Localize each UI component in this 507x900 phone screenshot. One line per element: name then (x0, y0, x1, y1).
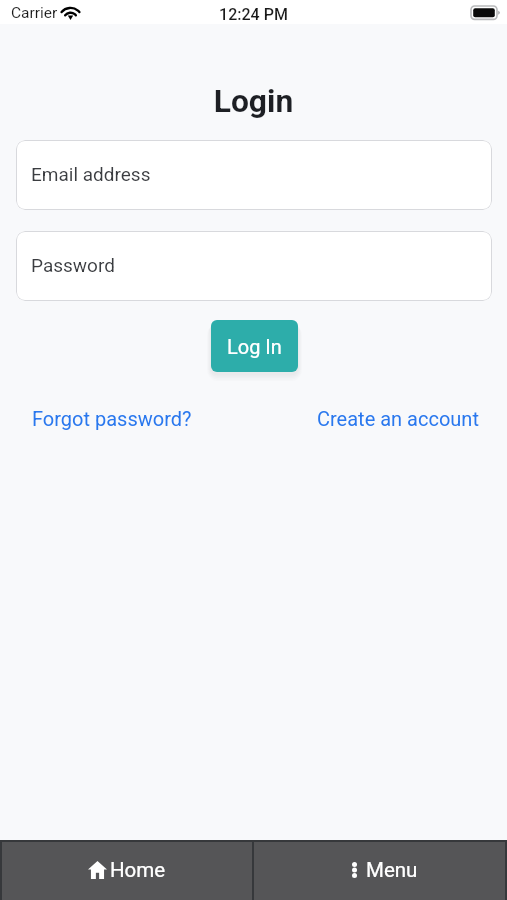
button[interactable]: Password (16, 231, 492, 301)
button[interactable]: Forgot password? (20, 401, 204, 436)
button[interactable]: Email address (16, 140, 492, 210)
other: Menu (352, 862, 357, 878)
staticText: 12:24 PM (0, 5, 507, 24)
button[interactable]: Home (2, 842, 252, 900)
staticText: Menu (366, 858, 418, 882)
staticText: Login (0, 82, 507, 119)
staticText: Carrier (11, 4, 58, 22)
button[interactable]: Menu (254, 842, 505, 900)
staticText: Create an account (317, 407, 479, 430)
staticText: Password (31, 254, 115, 276)
other: Home (88, 861, 107, 879)
button[interactable]: Log In (211, 320, 298, 372)
staticText: Forgot password? (32, 407, 192, 430)
button[interactable]: Create an account (305, 401, 491, 436)
staticText: Log In (227, 335, 282, 358)
staticText: Home (110, 858, 166, 882)
staticText: Email address (31, 163, 151, 185)
